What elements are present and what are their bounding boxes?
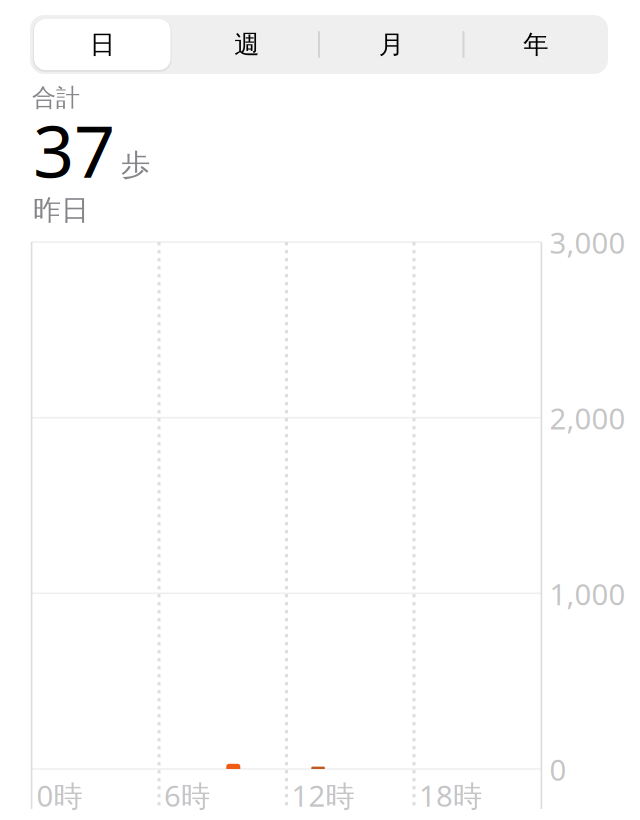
button[interactable]: 日 [30,15,174,74]
staticText: 1,000 [549,574,625,613]
button[interactable]: 週 [174,15,319,74]
staticText: 2,000 [549,399,625,438]
staticText: 18時 [419,776,482,815]
staticText: 昨日 [33,193,89,227]
staticText: 0 [549,750,566,789]
button[interactable]: 年 [463,15,608,74]
staticText: 合計 [32,83,80,112]
button[interactable]: 月 [319,15,463,74]
staticText: 6時 [164,776,210,815]
staticText: 日 [90,29,115,60]
staticText: 0時 [37,776,83,815]
staticText: 月 [379,29,404,60]
staticText: 37 [33,102,115,198]
staticText: 週 [234,29,259,60]
staticText: 歩 [121,147,150,183]
staticText: 12時 [291,776,354,815]
staticText: 3,000 [549,223,625,262]
staticText: 年 [523,29,548,60]
